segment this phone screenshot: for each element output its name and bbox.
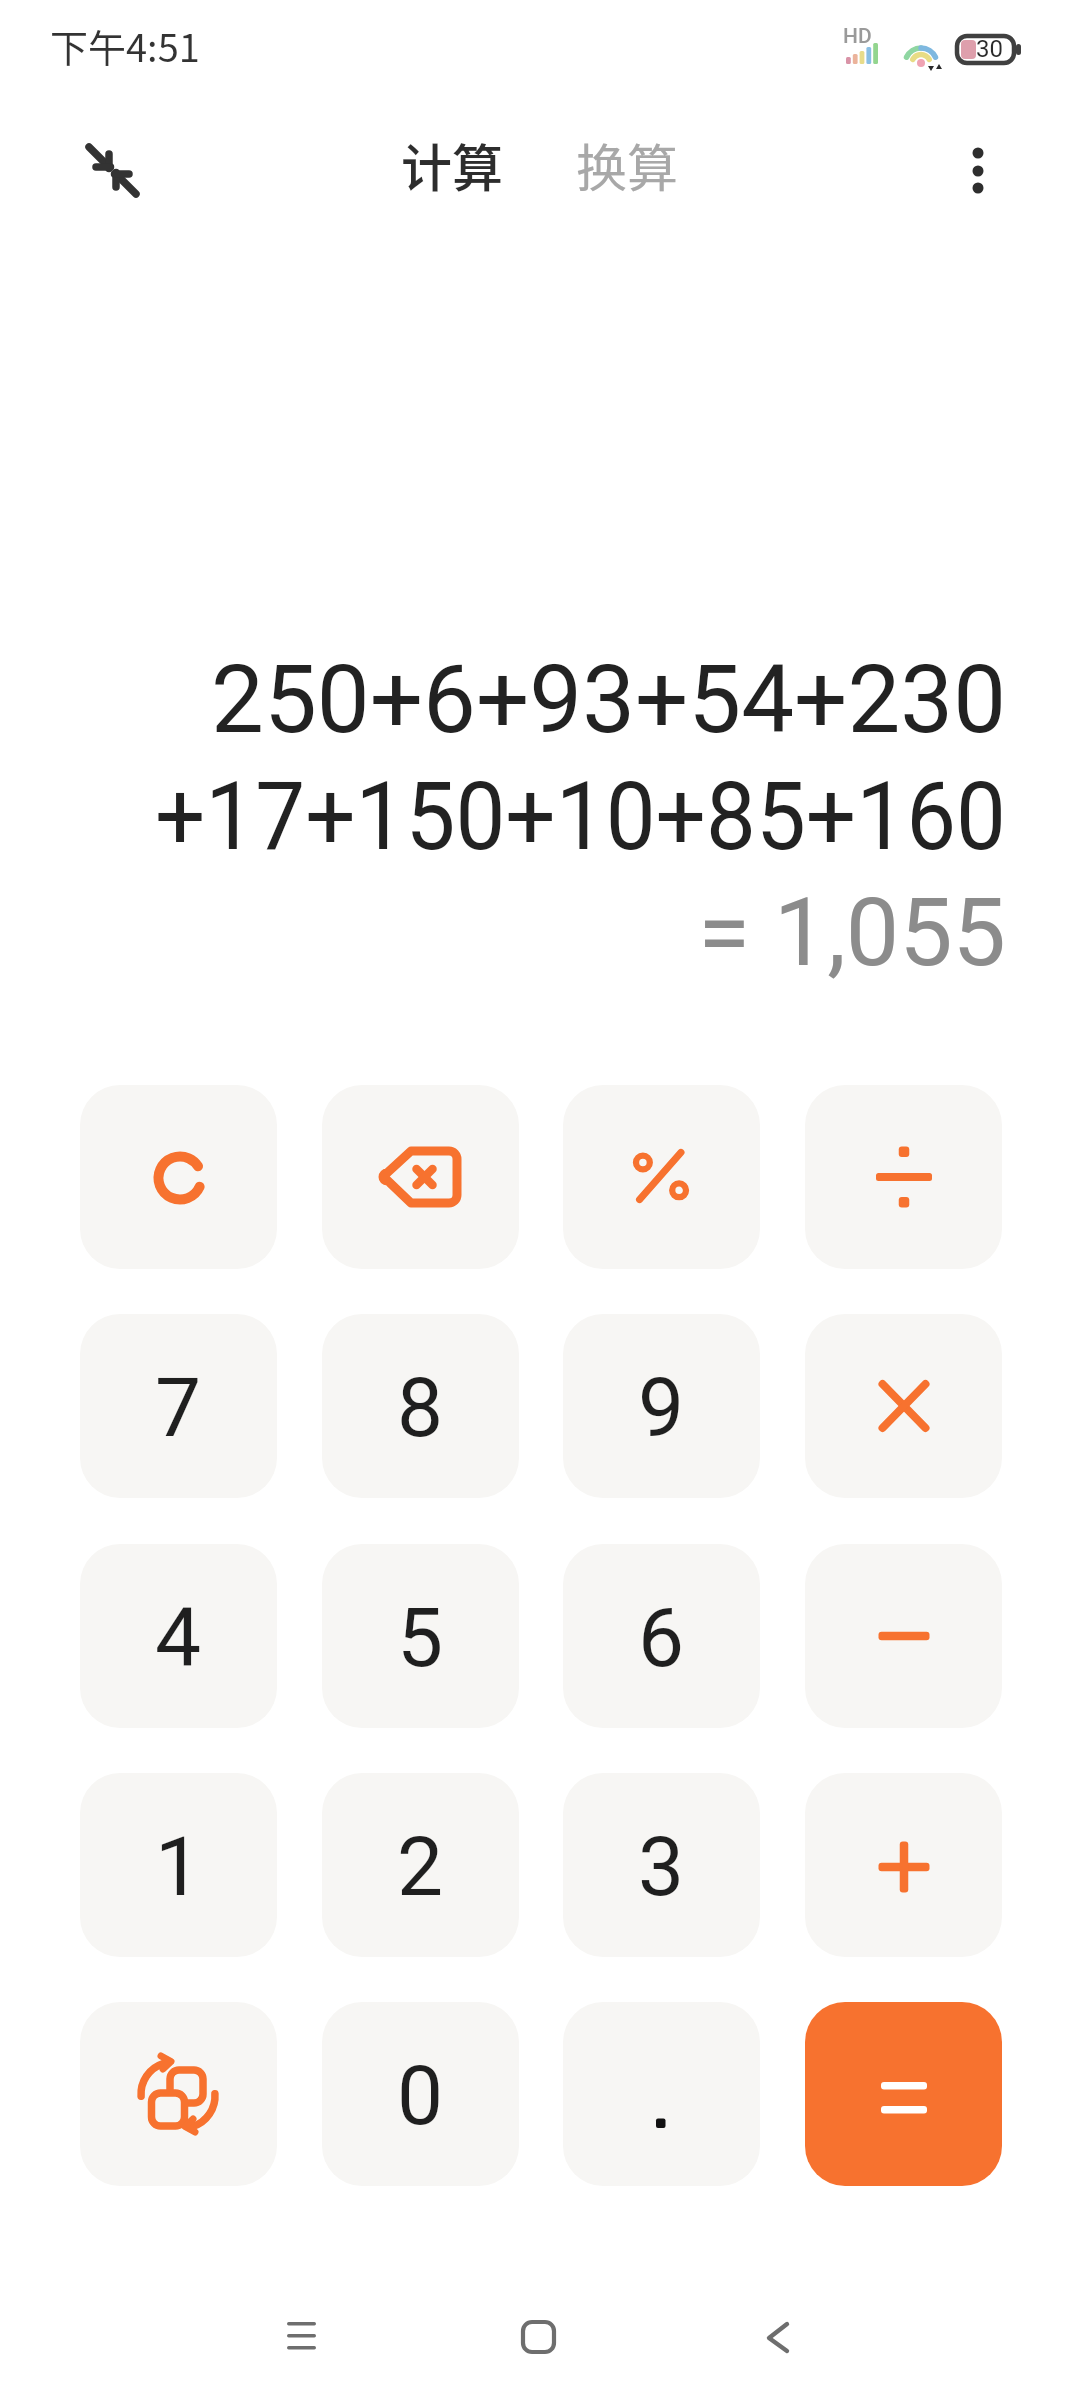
staticText: 1 xyxy=(155,1819,202,1915)
button[interactable] xyxy=(805,2002,1002,2186)
button[interactable] xyxy=(508,2306,568,2366)
staticText: 2 xyxy=(397,1819,444,1915)
button[interactable] xyxy=(805,1773,1002,1957)
button[interactable]: 9 xyxy=(563,1314,760,1498)
button[interactable] xyxy=(72,130,152,210)
button[interactable]: 5 xyxy=(322,1544,519,1728)
button[interactable]: 4 xyxy=(80,1544,277,1728)
button[interactable]: 0 xyxy=(322,2002,519,2186)
staticText: 6 xyxy=(638,1590,685,1686)
staticText: = 1,055 xyxy=(698,877,1006,988)
button[interactable]: 计算 xyxy=(401,128,504,202)
staticText: 250+6+93+54+230 xyxy=(211,644,1006,755)
staticText: 3 xyxy=(638,1819,685,1915)
staticText: 4 xyxy=(155,1590,202,1686)
staticText: 计算 xyxy=(401,128,504,202)
button[interactable]: 7 xyxy=(80,1314,277,1498)
button[interactable]: 2 xyxy=(322,1773,519,1957)
button[interactable]: 1 xyxy=(80,1773,277,1957)
button[interactable] xyxy=(80,2002,277,2186)
staticText: +17+150+10+85+160 xyxy=(154,761,1006,872)
button[interactable]: 6 xyxy=(563,1544,760,1728)
staticText: 5 xyxy=(397,1590,444,1686)
staticText: 9 xyxy=(638,1360,685,1456)
button[interactable] xyxy=(271,2306,331,2366)
button[interactable] xyxy=(563,2002,760,2186)
staticText: 8 xyxy=(397,1360,444,1456)
staticText: 换算 xyxy=(576,128,679,202)
staticText: 7 xyxy=(155,1360,202,1456)
button[interactable] xyxy=(805,1544,1002,1728)
button[interactable] xyxy=(563,1085,760,1269)
button[interactable]: 3 xyxy=(563,1773,760,1957)
staticText: 0 xyxy=(397,2048,444,2144)
button[interactable] xyxy=(80,1085,277,1269)
button[interactable] xyxy=(805,1085,1002,1269)
button[interactable] xyxy=(748,2306,808,2366)
button[interactable] xyxy=(322,1085,519,1269)
button[interactable]: 换算 xyxy=(576,128,679,202)
button[interactable] xyxy=(948,140,1008,200)
button[interactable]: 8 xyxy=(322,1314,519,1498)
staticText: HD xyxy=(843,24,872,49)
staticText: 30 xyxy=(976,35,1003,63)
button[interactable] xyxy=(805,1314,1002,1498)
staticText: 下午4:51 xyxy=(50,18,200,73)
